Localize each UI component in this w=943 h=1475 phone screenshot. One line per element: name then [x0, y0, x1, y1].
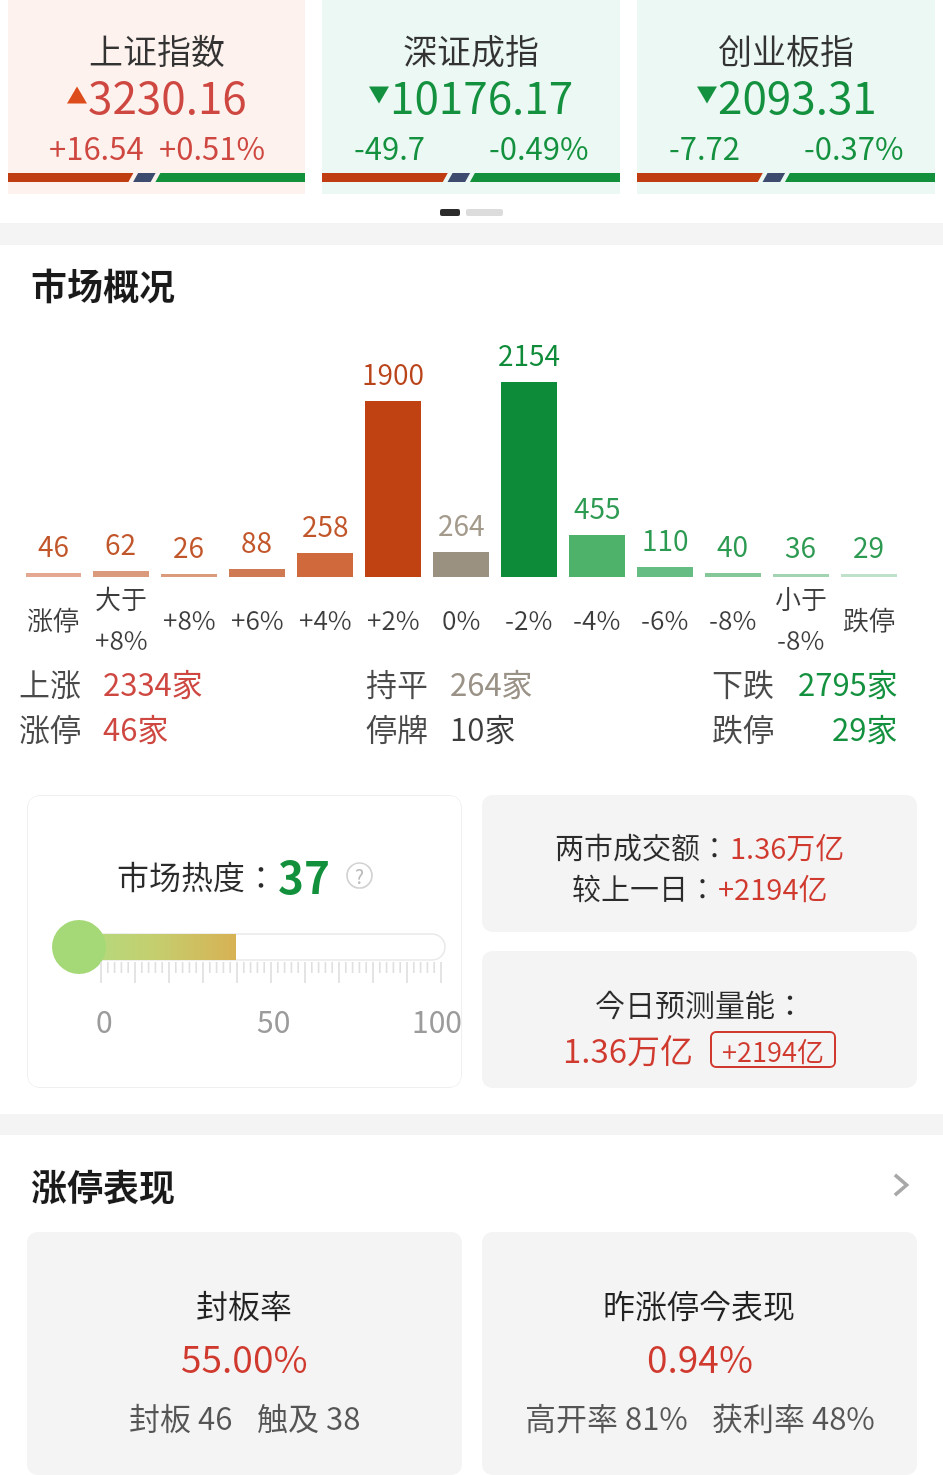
other: 查看更多涨停表现	[885, 1170, 915, 1200]
staticText: 100	[412, 998, 462, 1041]
staticText: 0.94%	[647, 1330, 753, 1384]
staticText: 264	[438, 504, 485, 545]
staticText: 上涨	[19, 660, 81, 705]
staticText: 跌停	[712, 705, 774, 750]
staticText: 50	[257, 998, 291, 1041]
button[interactable]: 两市成交额：	[482, 795, 917, 932]
staticText: 10家	[450, 705, 516, 750]
staticText: 封板率	[196, 1281, 293, 1327]
staticText: -49.7	[354, 124, 425, 169]
staticText: 触及 38	[257, 1394, 361, 1439]
staticText: 37	[278, 843, 330, 907]
staticText: 封板 46	[129, 1394, 233, 1439]
staticText: -0.49%	[489, 124, 589, 169]
staticText: 10176.17	[390, 63, 574, 127]
staticText: 88	[241, 521, 273, 562]
staticText: +2194亿	[718, 866, 828, 908]
staticText: 涨停	[27, 600, 80, 638]
staticText: 62	[105, 523, 137, 564]
staticText: -8%	[709, 600, 757, 638]
staticText: 高开率 81%	[525, 1394, 688, 1439]
staticText: 1.36万亿	[730, 825, 845, 867]
staticText: -0.37%	[804, 124, 904, 169]
staticText: +4%	[299, 600, 352, 638]
staticText: -6%	[641, 600, 689, 638]
button[interactable]: 封板率	[27, 1232, 462, 1475]
staticText: +8%	[163, 600, 216, 638]
staticText: +2194亿	[722, 1031, 824, 1068]
staticText: 0	[96, 998, 113, 1041]
staticText: 停牌	[366, 705, 428, 750]
staticText: 1900	[362, 353, 425, 394]
staticText: -2%	[505, 600, 553, 638]
staticText: 0%	[442, 600, 481, 638]
staticText: 深证成指	[403, 25, 539, 74]
staticText: 市场概况	[31, 258, 176, 310]
staticText: 今日预测量能：	[595, 981, 805, 1024]
staticText: 2093.31	[718, 63, 877, 127]
staticText: 46家	[103, 705, 169, 750]
staticText: 29	[853, 526, 885, 567]
staticText: 36	[785, 526, 817, 567]
staticText: 创业板指	[718, 25, 854, 74]
staticText: 持平	[366, 660, 428, 705]
staticText: 29家	[832, 705, 898, 750]
staticText: 市场热度：	[117, 852, 278, 898]
staticText: +16.54	[49, 124, 144, 169]
staticText: 大于	[95, 579, 148, 617]
staticText: 110	[642, 519, 689, 560]
staticText: -4%	[573, 600, 621, 638]
staticText: 2795家	[798, 660, 898, 705]
staticText: +8%	[95, 620, 148, 658]
staticText: 264家	[450, 660, 533, 705]
staticText: -8%	[777, 620, 825, 658]
staticText: 下跌	[712, 660, 774, 705]
staticText: 跌停	[843, 600, 896, 638]
staticText: 涨停	[19, 705, 81, 750]
button[interactable]: 创业板指	[637, 0, 935, 194]
staticText: 昨涨停今表现	[603, 1281, 796, 1327]
staticText: ?	[355, 862, 365, 889]
staticText: +2%	[367, 600, 420, 638]
staticText: 26	[173, 526, 205, 567]
button[interactable]: 深证成指	[322, 0, 620, 194]
staticText: 涨停表现	[31, 1159, 176, 1211]
staticText: +6%	[231, 600, 284, 638]
staticText: 40	[717, 525, 749, 566]
staticText: 获利率 48%	[712, 1394, 875, 1439]
other: 市场热度说明	[346, 862, 373, 889]
staticText: 3230.16	[88, 63, 247, 127]
staticText: 上证指数	[89, 25, 225, 74]
staticText: 455	[574, 487, 621, 528]
button[interactable]: 昨涨停今表现	[482, 1232, 917, 1475]
button[interactable]: 市场热度：	[27, 795, 462, 1088]
staticText: -7.72	[669, 124, 740, 169]
staticText: 较上一日：	[572, 866, 718, 908]
button[interactable]: 今日预测量能：	[482, 951, 917, 1088]
staticText: 1.36万亿	[563, 1025, 694, 1073]
button[interactable]: 上证指数	[8, 0, 305, 194]
staticText: 两市成交额：	[555, 825, 730, 867]
staticText: 小于	[775, 579, 828, 617]
staticText: 46	[38, 525, 70, 566]
staticText: 2154	[498, 334, 561, 375]
button[interactable]: 涨停表现	[31, 1159, 915, 1211]
staticText: 2334家	[103, 660, 203, 705]
staticText: 258	[302, 505, 349, 546]
staticText: 55.00%	[181, 1330, 308, 1384]
staticText: +0.51%	[159, 124, 265, 169]
